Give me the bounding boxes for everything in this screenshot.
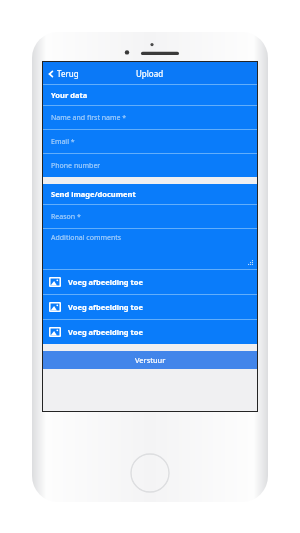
staticText: Voeg afbeelding toe	[68, 327, 143, 337]
staticText: Upload	[136, 68, 164, 79]
button[interactable]: Verstuur	[43, 351, 257, 369]
button[interactable]: Voeg afbeelding toe	[43, 320, 257, 344]
staticText: Reason *	[51, 212, 81, 222]
button[interactable]: Phone number	[43, 154, 257, 177]
staticText: Voeg afbeelding toe	[68, 302, 143, 312]
staticText: Verstuur	[135, 355, 166, 365]
button[interactable]: Email *	[43, 130, 257, 153]
button[interactable]: Voeg afbeelding toe	[43, 295, 257, 319]
staticText: Voeg afbeelding toe	[68, 277, 143, 287]
staticText: Your data	[51, 90, 88, 100]
staticText: Email *	[51, 137, 75, 147]
button[interactable]: Reason *	[43, 205, 257, 228]
button[interactable]: Additional comments	[43, 229, 257, 269]
staticText: Send image/document	[51, 189, 136, 199]
staticText: Terug	[57, 68, 79, 79]
other: Back	[47, 70, 55, 78]
button[interactable]: Voeg afbeelding toe	[43, 270, 257, 294]
staticText: Phone number	[51, 161, 101, 171]
button[interactable]: Name and first name *	[43, 106, 257, 129]
staticText: Additional comments	[51, 233, 122, 243]
staticText: Name and first name *	[51, 113, 127, 123]
button[interactable]: Back	[43, 68, 85, 79]
